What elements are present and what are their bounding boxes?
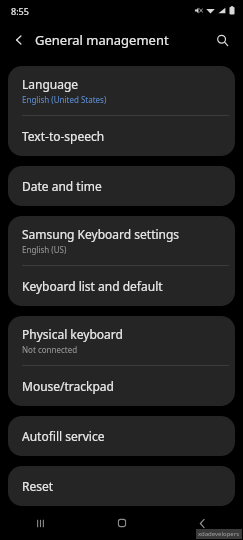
button[interactable]: Text-to-speech — [8, 116, 235, 156]
button[interactable]: Language — [8, 66, 235, 115]
staticText: Physical keyboard — [22, 326, 123, 342]
staticText: 8:55 — [11, 5, 29, 17]
staticText: Samsung Keyboard settings — [22, 226, 180, 242]
staticText: General management — [35, 31, 169, 49]
staticText: Text-to-speech — [22, 128, 105, 144]
staticText: Autofill service — [22, 428, 105, 444]
button[interactable]: Date and time — [8, 166, 235, 206]
staticText: Language — [22, 76, 79, 92]
staticText: xdadevelopers — [198, 530, 240, 538]
button[interactable]: Back — [162, 506, 243, 540]
staticText: Keyboard list and default — [22, 278, 163, 294]
button[interactable]: Reset — [8, 466, 235, 506]
button[interactable]: Back — [6, 27, 32, 53]
button[interactable]: Recents — [0, 506, 81, 540]
staticText: English (United States) — [22, 94, 107, 105]
button[interactable]: Physical keyboard — [8, 316, 235, 365]
staticText: English (US) — [22, 244, 67, 255]
button[interactable]: Home — [81, 506, 162, 540]
staticText: Date and time — [22, 178, 102, 194]
button[interactable]: Samsung Keyboard settings — [8, 216, 235, 265]
staticText: Reset — [22, 478, 54, 494]
button[interactable]: Mouse/trackpad — [8, 366, 235, 406]
button[interactable]: Keyboard list and default — [8, 266, 235, 306]
staticText: Mouse/trackpad — [22, 378, 114, 394]
staticText: Not connected — [22, 344, 78, 355]
button[interactable]: Search — [209, 27, 235, 53]
button[interactable]: Autofill service — [8, 416, 235, 456]
